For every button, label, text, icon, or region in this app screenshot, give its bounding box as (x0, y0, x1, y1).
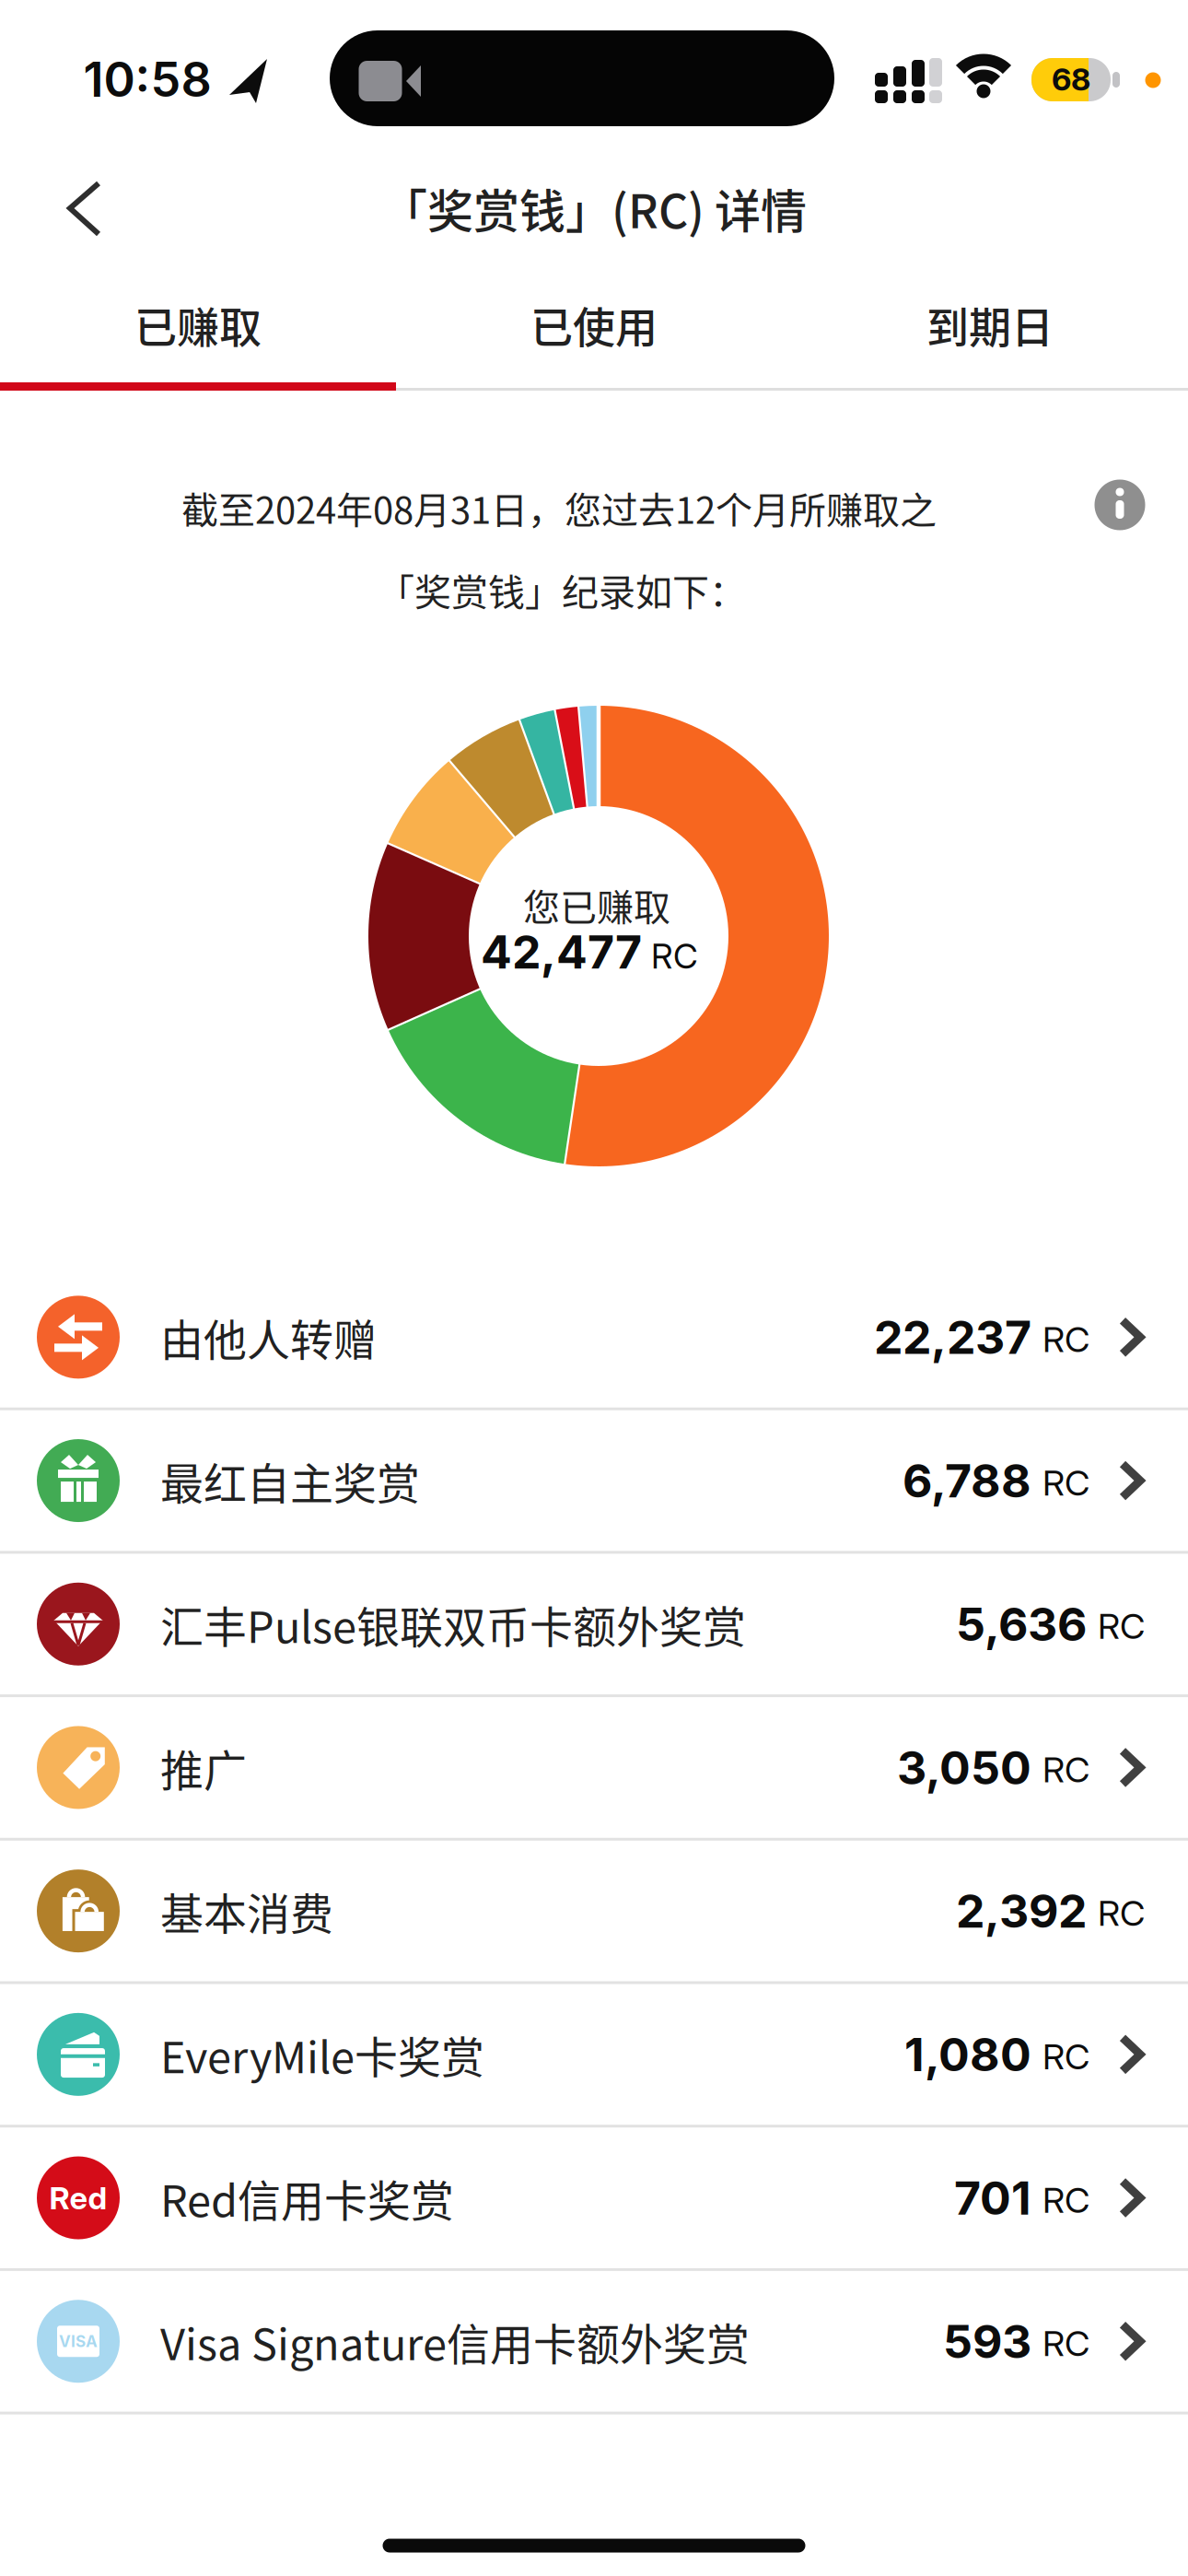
staticText: 「奖赏钱」(RC) 详情 (381, 175, 807, 242)
staticText: 10:58 (83, 50, 211, 108)
staticText: Red (49, 2179, 107, 2217)
staticText: RC (1042, 1461, 1089, 1504)
staticText: RC (1098, 1892, 1145, 1934)
staticText: VISA (59, 2332, 98, 2351)
staticText: RC (1042, 2179, 1089, 2221)
staticText: 3,050 (897, 1740, 1031, 1795)
staticText: 截至2024年08月31日，您过去12个月所赚取之 (181, 481, 937, 534)
staticText: RC (1042, 2322, 1089, 2365)
staticText: 6,788 (903, 1453, 1031, 1508)
staticText: RC (1098, 1605, 1145, 1647)
staticText: 5,636 (956, 1596, 1087, 1652)
staticText: Visa Signature信用卡额外奖赏 (160, 2310, 750, 2373)
staticText: RC (1042, 1748, 1089, 1791)
staticText: 基本消费 (160, 1880, 333, 1942)
staticText: 593 (943, 2313, 1031, 2369)
staticText: 由他人转赠 (160, 1306, 377, 1369)
staticText: 1,080 (904, 2027, 1031, 2082)
staticText: 701 (954, 2170, 1031, 2226)
staticText: 推广 (160, 1736, 247, 1799)
staticText: 2,392 (956, 1883, 1087, 1939)
staticText: 已使用 (530, 294, 658, 355)
staticText: RC (1042, 1318, 1089, 1360)
staticText: 22,237 (874, 1309, 1031, 1365)
staticText: 已赚取 (134, 294, 262, 355)
staticText: RC (651, 936, 698, 977)
staticText: 到期日 (926, 294, 1054, 355)
staticText: EveryMile卡奖赏 (160, 2023, 484, 2086)
staticText: 汇丰Pulse银联双币卡额外奖赏 (160, 1593, 746, 1655)
staticText: 您已赚取 (523, 878, 670, 931)
staticText: Red信用卡奖赏 (160, 2167, 454, 2229)
staticText: 42,477 (481, 924, 642, 980)
staticText: 68 (1052, 60, 1090, 98)
staticText: RC (1042, 2035, 1089, 2078)
staticText: 最红自主奖赏 (160, 1449, 420, 1512)
staticText: 「奖赏钱」纪录如下： (378, 563, 746, 616)
